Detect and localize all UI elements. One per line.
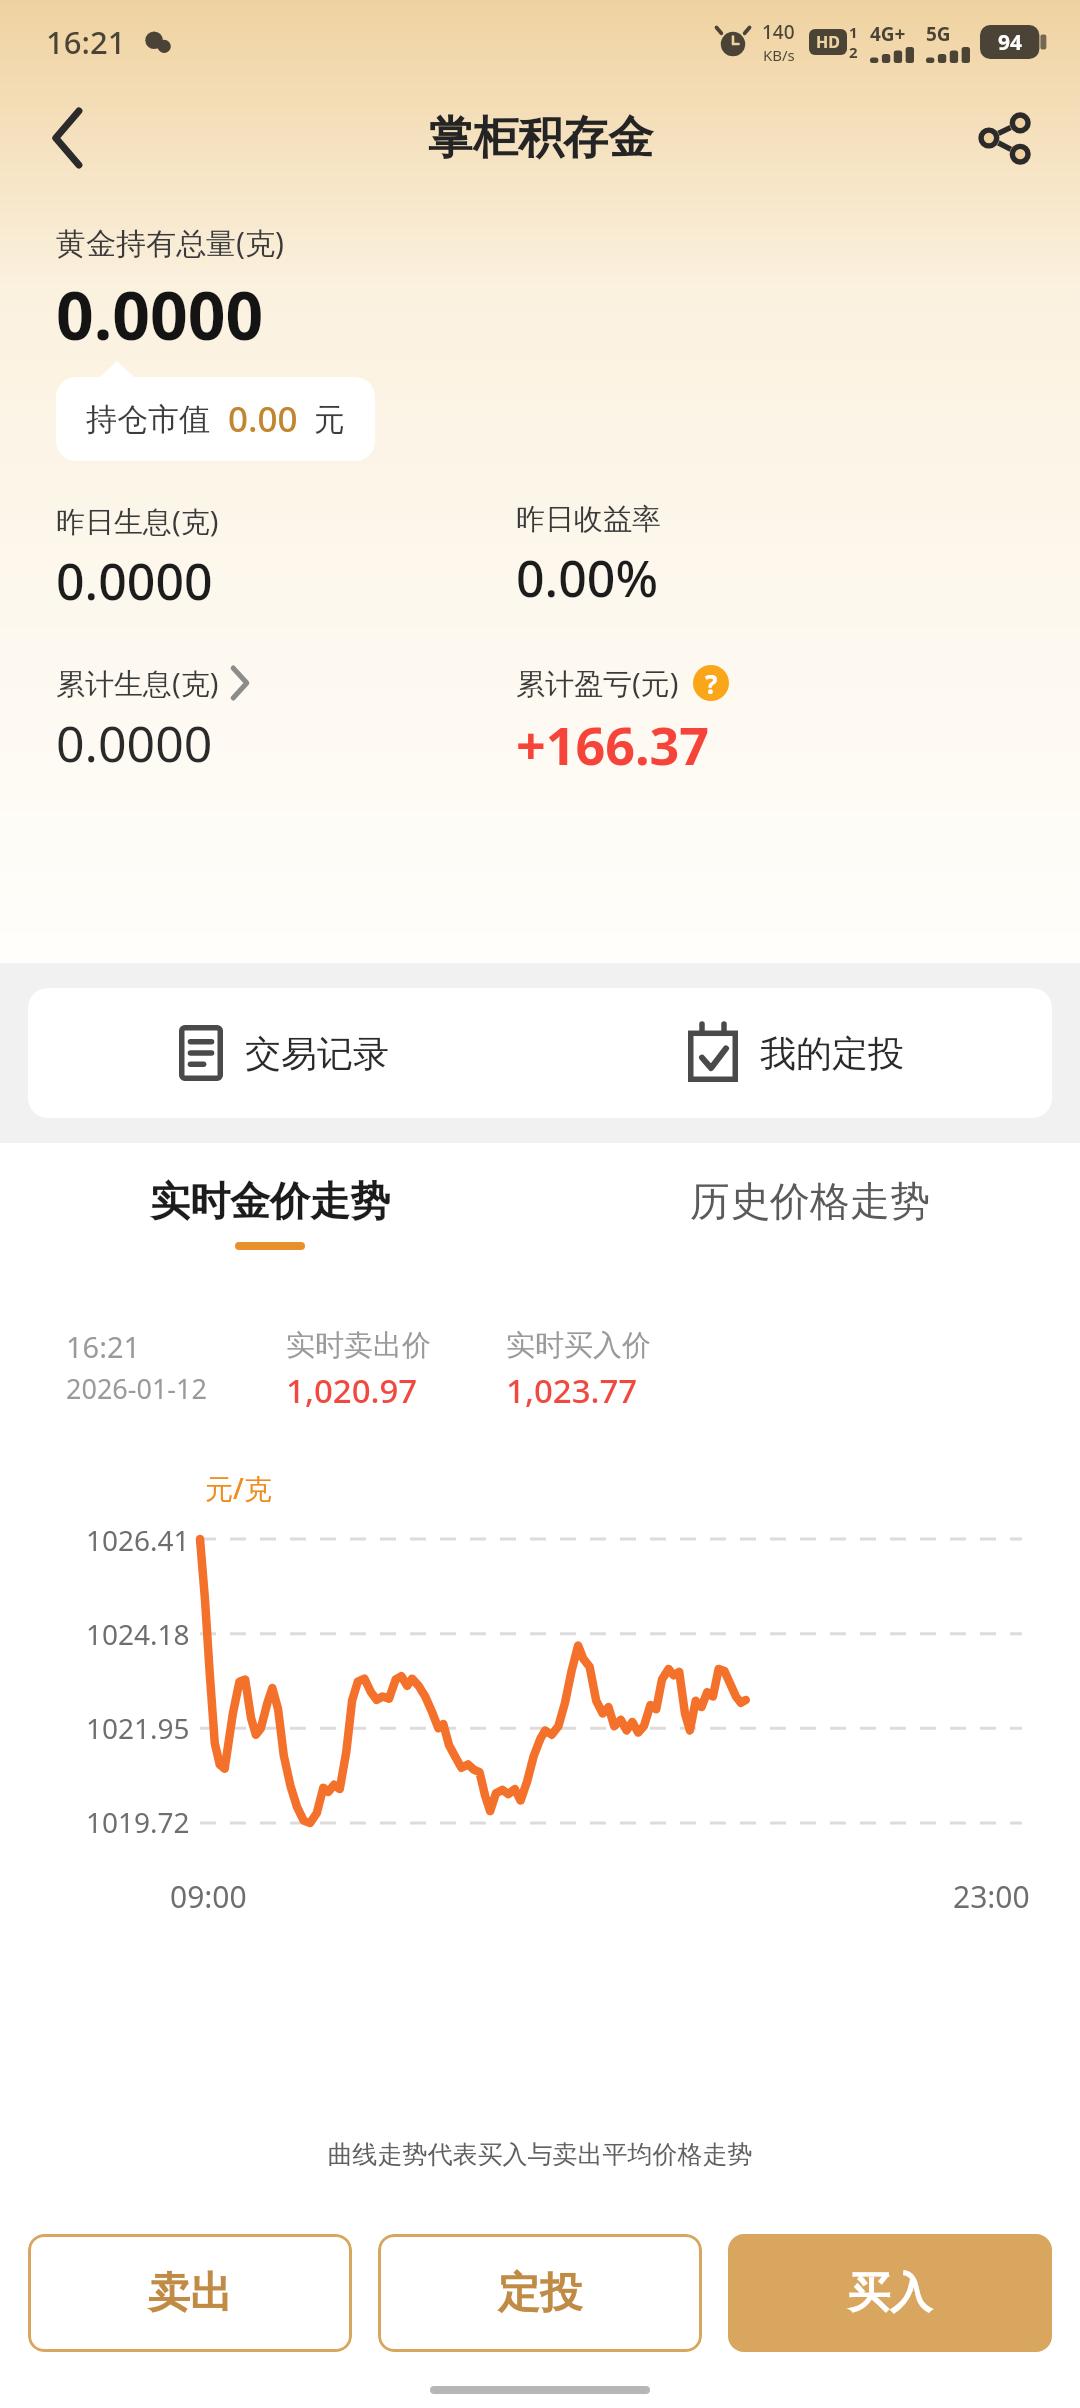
staticText: 买入	[848, 2267, 932, 2320]
staticText: HD	[816, 31, 840, 53]
staticText: 1019.72	[86, 1803, 190, 1841]
button[interactable]: 累计生息(克)	[56, 663, 249, 703]
staticText: 掌柜积存金	[428, 110, 653, 167]
staticText: 0.00	[228, 395, 298, 443]
staticText: 实时金价走势	[150, 1176, 390, 1226]
staticText: 昨日收益率	[516, 501, 661, 538]
button[interactable]: 定投	[378, 2234, 702, 2352]
staticText: 1026.41	[86, 1521, 190, 1559]
button[interactable]: 交易记录	[28, 988, 540, 1118]
staticText: 曲线走势代表买入与卖出平均价格走势	[0, 2139, 1080, 2170]
staticText: 定投	[498, 2267, 582, 2320]
staticText: 5G	[926, 21, 951, 47]
staticText: 累计盈亏(元)	[516, 663, 679, 703]
staticText: KB/s	[763, 45, 795, 65]
button[interactable]: 持仓市值	[56, 377, 375, 461]
button[interactable]: Share	[958, 92, 1050, 184]
button[interactable]: 我的定投	[540, 988, 1052, 1118]
staticText: 卖出	[148, 2267, 232, 2320]
staticText: 140	[762, 19, 795, 45]
staticText: 94	[998, 28, 1023, 57]
staticText: +166.37	[516, 709, 710, 780]
staticText: ?	[705, 666, 718, 701]
staticText: 我的定投	[760, 1031, 904, 1076]
staticText: 1021.95	[86, 1709, 190, 1747]
staticText: 元	[314, 400, 345, 439]
staticText: 23:00	[953, 1876, 1030, 1917]
button[interactable]: 历史价格走势	[540, 1143, 1080, 1283]
staticText: 1024.18	[86, 1615, 190, 1653]
staticText: 0.0000	[56, 269, 264, 359]
staticText: 黄金持有总量(克)	[56, 222, 284, 263]
staticText: 1	[849, 22, 858, 42]
button[interactable]: 实时金价走势	[0, 1143, 540, 1283]
button[interactable]: 卖出	[28, 2234, 352, 2352]
staticText: 昨日生息(克)	[56, 501, 219, 541]
staticText: 1,020.97	[286, 1368, 418, 1413]
button[interactable]: Back	[22, 92, 114, 184]
staticText: 累计生息(克)	[56, 663, 219, 703]
staticText: 历史价格走势	[690, 1176, 930, 1226]
staticText: 实时买入价	[506, 1327, 651, 1364]
staticText: 16:21	[46, 21, 126, 63]
button[interactable]: 买入	[728, 2234, 1052, 2352]
staticText: 交易记录	[245, 1031, 389, 1076]
staticText: 0.00%	[516, 544, 658, 612]
staticText: 0.0000	[56, 709, 213, 777]
staticText: 2	[849, 42, 858, 62]
staticText: 0.0000	[56, 547, 213, 615]
staticText: 持仓市值	[86, 400, 210, 439]
staticText: 元/克	[205, 1469, 272, 1507]
staticText: 09:00	[170, 1876, 247, 1917]
staticText: 实时卖出价	[286, 1327, 431, 1364]
staticText: 4G+	[870, 21, 906, 47]
staticText: 2026-01-12	[66, 1370, 207, 1407]
staticText: 16:21	[66, 1327, 141, 1366]
button[interactable]: Help	[693, 665, 729, 701]
staticText: 1,023.77	[506, 1368, 638, 1413]
